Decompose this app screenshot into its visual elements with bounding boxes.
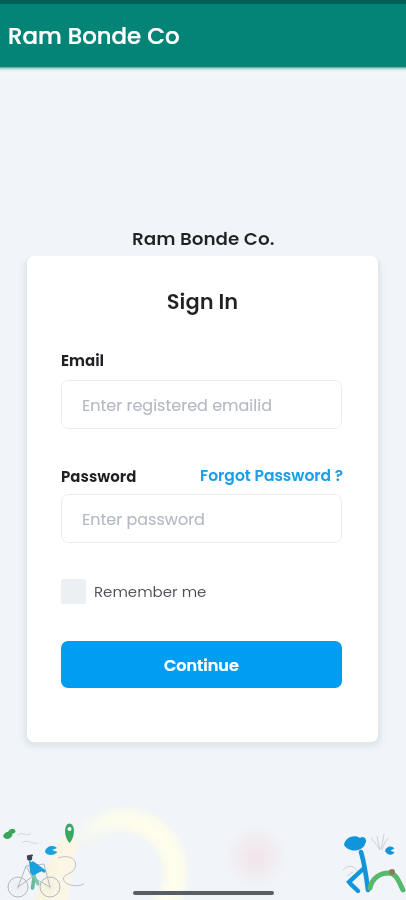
staticText: Sign In bbox=[27, 287, 378, 316]
button[interactable]: Remember me bbox=[61, 579, 207, 604]
staticText: Remember me bbox=[94, 581, 207, 602]
button[interactable]: Continue bbox=[61, 641, 342, 688]
button[interactable]: Enter registered emailid bbox=[61, 380, 342, 429]
staticText: Ram Bonde Co. bbox=[132, 226, 275, 252]
button[interactable]: Forgot Password ? bbox=[200, 465, 344, 487]
staticText: Enter registered emailid bbox=[82, 394, 272, 416]
staticText: Ram Bonde Co bbox=[8, 20, 180, 52]
staticText: Forgot Password ? bbox=[200, 465, 344, 487]
staticText: Email bbox=[61, 350, 105, 371]
staticText: Enter password bbox=[82, 508, 205, 530]
staticText: Continue bbox=[164, 654, 239, 676]
staticText: Password bbox=[61, 466, 137, 487]
button[interactable]: Enter password bbox=[61, 494, 342, 543]
